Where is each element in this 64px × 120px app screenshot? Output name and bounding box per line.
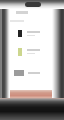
button[interactable] [8, 69, 55, 76]
button[interactable] [8, 47, 55, 56]
button[interactable] [8, 9, 55, 16]
button[interactable] [8, 29, 55, 38]
button[interactable] [8, 90, 55, 98]
